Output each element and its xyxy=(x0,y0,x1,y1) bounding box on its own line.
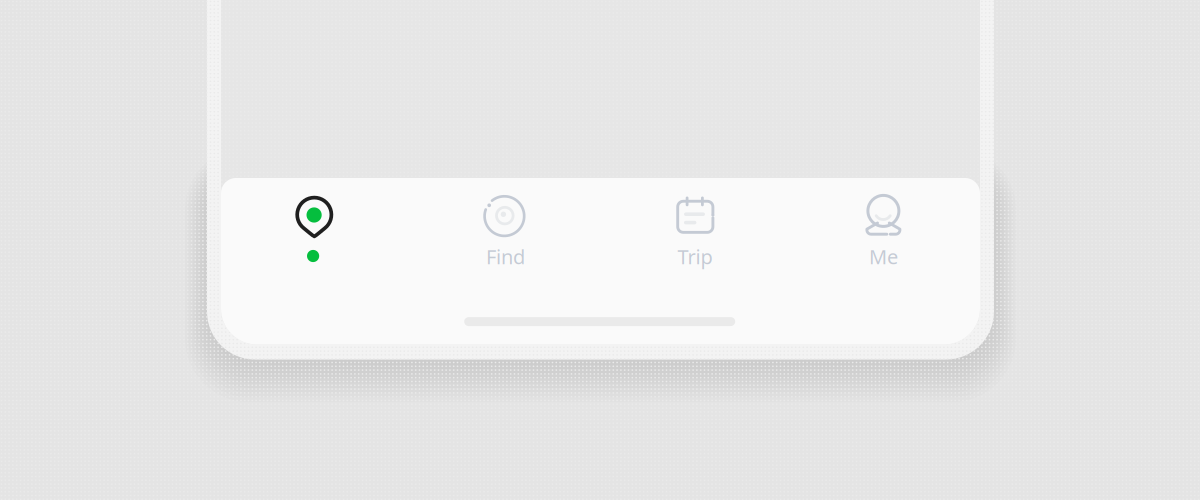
staticText: Me xyxy=(869,243,898,270)
button[interactable]: Trip xyxy=(620,157,770,277)
staticText: Trip xyxy=(677,243,712,270)
button[interactable]: Nearby xyxy=(238,157,388,277)
button[interactable]: Me xyxy=(808,157,958,277)
button[interactable]: Find xyxy=(429,157,579,277)
staticText: Find xyxy=(486,243,525,270)
